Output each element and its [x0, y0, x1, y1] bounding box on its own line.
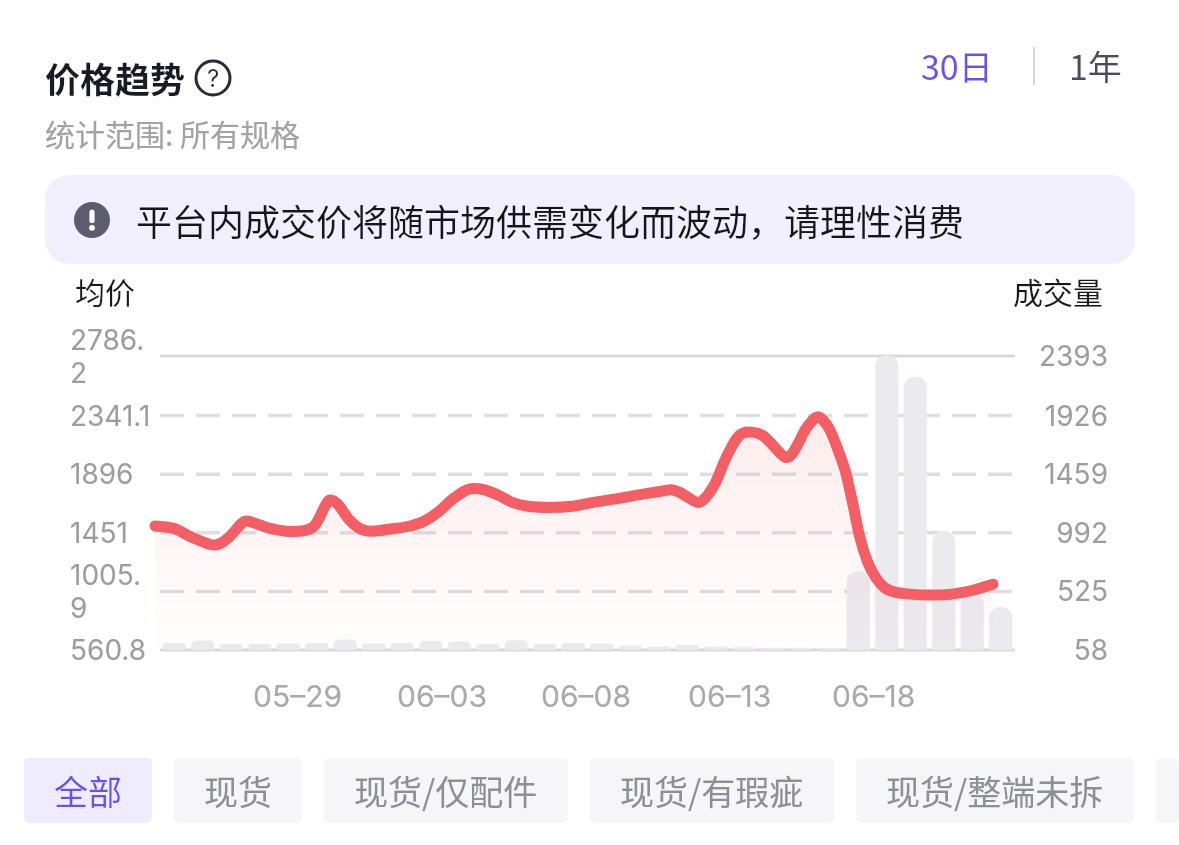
staticText: ?: [207, 64, 220, 93]
staticText: 统计范围: 所有规格: [45, 111, 301, 154]
staticText: 1年: [1069, 41, 1122, 90]
staticText: 06–08: [541, 678, 632, 714]
staticText: 均价: [75, 269, 135, 312]
staticText: 560.8: [70, 633, 147, 667]
staticText: 1005.9: [70, 558, 154, 625]
button[interactable]: 现货/整端未拆: [856, 758, 1134, 823]
button[interactable]: 全部: [24, 758, 152, 823]
staticText: 06–03: [397, 678, 487, 714]
button[interactable]: 价格趋势说明: [195, 60, 231, 96]
staticText: 06–13: [688, 678, 772, 714]
staticText: 1451: [70, 516, 128, 550]
staticText: 平台内成交价将随市场供需变化而波动，请理性消费: [136, 194, 965, 246]
staticText: 2341.1: [70, 399, 151, 433]
staticText: 06–18: [832, 678, 916, 714]
button[interactable]: 30日: [905, 31, 1009, 100]
staticText: 现货/仅配件: [354, 766, 538, 815]
button[interactable]: 1年: [1053, 31, 1138, 100]
staticText: 现货/整端未拆: [886, 766, 1104, 815]
staticText: 现货: [204, 766, 272, 815]
staticText: 价格趋势: [45, 52, 186, 103]
staticText: 现货/有瑕疵: [620, 766, 804, 815]
staticText: 525: [1056, 574, 1108, 608]
staticText: 2393: [1038, 339, 1108, 373]
button[interactable]: 平台内成交价将随市场供需变化而波动，请理性消费: [45, 175, 1135, 264]
staticText: 1459: [1044, 457, 1108, 491]
staticText: 1926: [1044, 399, 1108, 433]
staticText: 30日: [921, 41, 993, 90]
button[interactable]: 现货: [174, 758, 302, 823]
staticText: 58: [1073, 633, 1108, 667]
staticText: 全部: [54, 766, 122, 815]
staticText: 992: [1056, 516, 1108, 550]
button[interactable]: 现货/仅配件: [324, 758, 568, 823]
staticText: 05–29: [253, 678, 343, 714]
staticText: 成交量: [1013, 269, 1103, 312]
button[interactable]: 现货/有瑕疵: [590, 758, 834, 823]
staticText: 1896: [70, 457, 134, 491]
staticText: 2786.2: [70, 323, 154, 390]
